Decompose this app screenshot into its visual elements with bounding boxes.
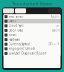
staticText: On (55, 24, 59, 27)
staticText: Apple (50, 15, 59, 18)
staticText: Low-Level Diagnostic Report (8, 52, 46, 55)
staticText: Open Data (8, 29, 22, 32)
button[interactable]: Currency Symbol (3, 42, 60, 46)
button[interactable]: Time Server (3, 14, 60, 19)
staticText: Reset (8, 33, 16, 37)
staticText: USD — $ (47, 42, 59, 46)
button[interactable]: Fingerprint Unlock (3, 46, 60, 51)
staticText: System (51, 29, 59, 32)
button[interactable]: General (3, 8, 14, 13)
button[interactable]: Open Data (3, 28, 60, 33)
button[interactable]: Low-Level Diagnostic Report (3, 51, 60, 56)
staticText: Time Server (8, 15, 23, 18)
button[interactable]: Dates (3, 19, 60, 23)
button[interactable]: Cloud Sync (3, 23, 60, 28)
button[interactable]: Hardware (3, 37, 60, 42)
staticText: Dates (8, 19, 15, 23)
staticText: Cloud Sync (8, 24, 23, 27)
staticText: Hardware (8, 38, 20, 41)
staticText: Thunderbolt Device (12, 1, 52, 6)
button[interactable]: Reset (3, 33, 60, 37)
button[interactable]: Display (15, 8, 26, 13)
staticText: Currency Symbol (8, 42, 30, 46)
staticText: Fingerprint Unlock (8, 47, 34, 50)
